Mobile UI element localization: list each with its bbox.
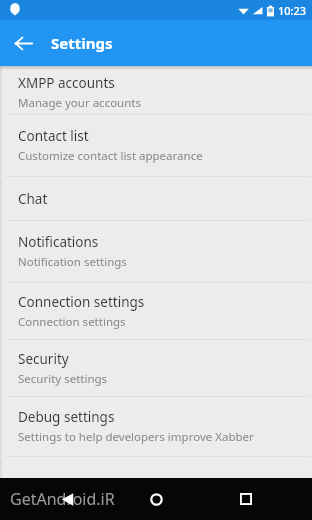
- button[interactable]: Chat: [0, 177, 312, 220]
- staticText: GetAndroid.iR: [10, 488, 115, 510]
- staticText: Security: [18, 350, 69, 368]
- button[interactable]: Recents: [233, 486, 259, 512]
- button[interactable]: Back: [0, 20, 46, 66]
- staticText: Debug settings: [18, 408, 115, 426]
- button[interactable]: Debug settings: [0, 397, 312, 456]
- staticText: Settings: [51, 33, 113, 53]
- button[interactable]: Back: [55, 487, 79, 511]
- staticText: Connection settings: [18, 293, 145, 311]
- staticText: Settings to help developers improve Xabb…: [18, 429, 254, 445]
- button[interactable]: Notifications: [0, 221, 312, 282]
- staticText: Contact list: [18, 127, 89, 145]
- staticText: Connection settings: [18, 314, 126, 330]
- button[interactable]: Connection settings: [0, 283, 312, 339]
- staticText: XMPP accounts: [18, 74, 115, 92]
- staticText: Notifications: [18, 233, 99, 251]
- staticText: Security settings: [18, 371, 108, 387]
- button[interactable]: Contact list: [0, 115, 312, 176]
- staticText: 10:23: [278, 3, 307, 18]
- button[interactable]: Security: [0, 340, 312, 396]
- button[interactable]: XMPP accounts: [0, 70, 312, 114]
- staticText: Notification settings: [18, 254, 127, 270]
- staticText: Chat: [18, 190, 48, 208]
- staticText: Manage your accounts: [18, 95, 141, 111]
- button[interactable]: Home: [143, 486, 169, 512]
- staticText: Customize contact list appearance: [18, 148, 203, 164]
